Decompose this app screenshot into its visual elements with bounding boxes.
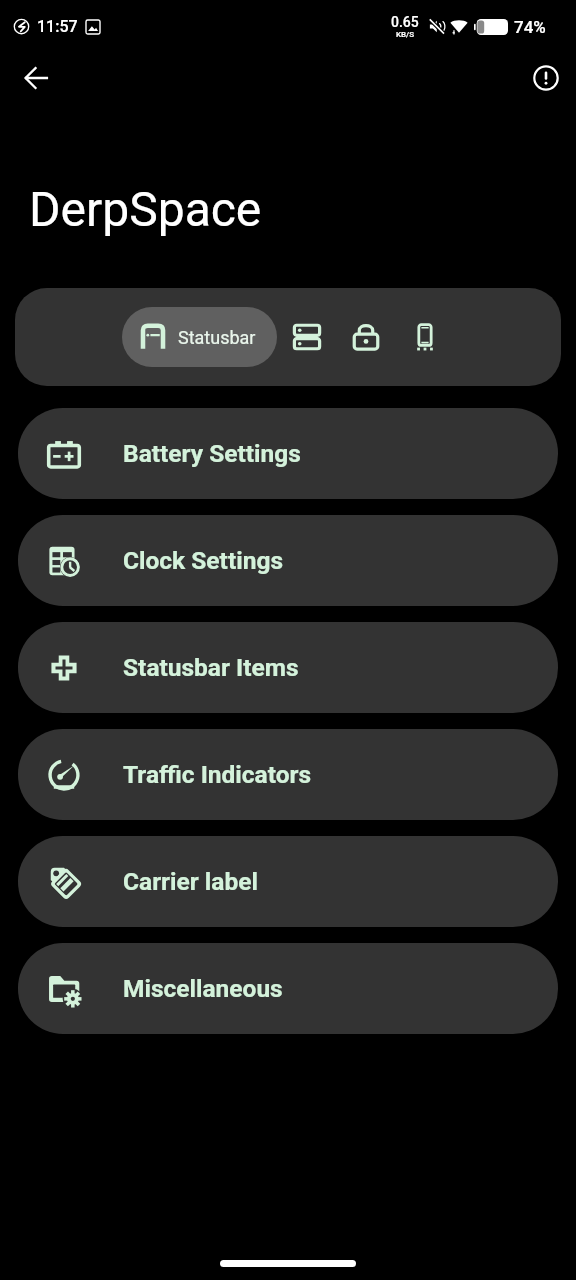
button[interactable]: Info xyxy=(522,54,570,102)
staticText: 0.65 xyxy=(391,14,419,30)
staticText: DerpSpace xyxy=(29,181,262,237)
button[interactable]: Battery Settings xyxy=(18,408,558,499)
button[interactable]: Miscellaneous xyxy=(18,943,558,1034)
staticText: KB/S xyxy=(396,30,415,39)
staticText: Statusbar xyxy=(178,327,256,348)
button[interactable]: Statusbar Items xyxy=(18,622,558,713)
button[interactable]: Lock xyxy=(336,311,395,363)
staticText: 74% xyxy=(514,17,546,37)
button[interactable]: Traffic Indicators xyxy=(18,729,558,820)
staticText: Miscellaneous xyxy=(123,974,283,1003)
button[interactable]: Carrier label xyxy=(18,836,558,927)
button[interactable]: Device xyxy=(395,311,454,363)
button[interactable]: Server xyxy=(277,311,336,363)
button[interactable]: Clock Settings xyxy=(18,515,558,606)
staticText: Statusbar Items xyxy=(123,653,299,682)
staticText: Battery Settings xyxy=(123,439,301,468)
staticText: Carrier label xyxy=(123,867,258,896)
staticText: 11:57 xyxy=(37,17,78,36)
staticText: Traffic Indicators xyxy=(123,760,312,789)
button[interactable]: Statusbar xyxy=(122,307,277,367)
button[interactable]: Back xyxy=(12,54,60,102)
staticText: Clock Settings xyxy=(123,546,283,575)
